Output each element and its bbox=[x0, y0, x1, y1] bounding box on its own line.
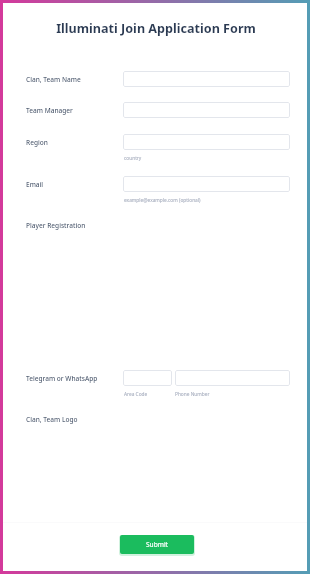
staticText: Team Manager bbox=[26, 106, 73, 115]
button[interactable]: Submit bbox=[120, 535, 194, 554]
staticText: country bbox=[124, 155, 142, 162]
staticText: Email bbox=[26, 180, 44, 189]
button[interactable]: Email bbox=[123, 176, 290, 192]
staticText: Phone Number bbox=[175, 391, 210, 398]
button[interactable]: Phone Number bbox=[175, 370, 290, 386]
staticText: Player Registration bbox=[26, 221, 86, 230]
staticText: Telegram or WhatsApp bbox=[26, 374, 98, 383]
staticText: Region bbox=[26, 138, 48, 147]
button[interactable]: Clan, Team Name bbox=[123, 71, 290, 87]
button[interactable]: Team Manager bbox=[123, 102, 290, 118]
staticText: Area Code bbox=[124, 391, 148, 398]
button[interactable]: Area Code bbox=[123, 370, 172, 386]
button[interactable]: Region bbox=[123, 134, 290, 150]
staticText: Clan, Team Logo bbox=[26, 415, 78, 424]
staticText: Clan, Team Name bbox=[26, 75, 81, 84]
staticText: Submit bbox=[146, 540, 168, 549]
staticText: example@example.com (optional) bbox=[124, 197, 201, 204]
staticText: Illuminati Join Application Form bbox=[4, 20, 308, 37]
